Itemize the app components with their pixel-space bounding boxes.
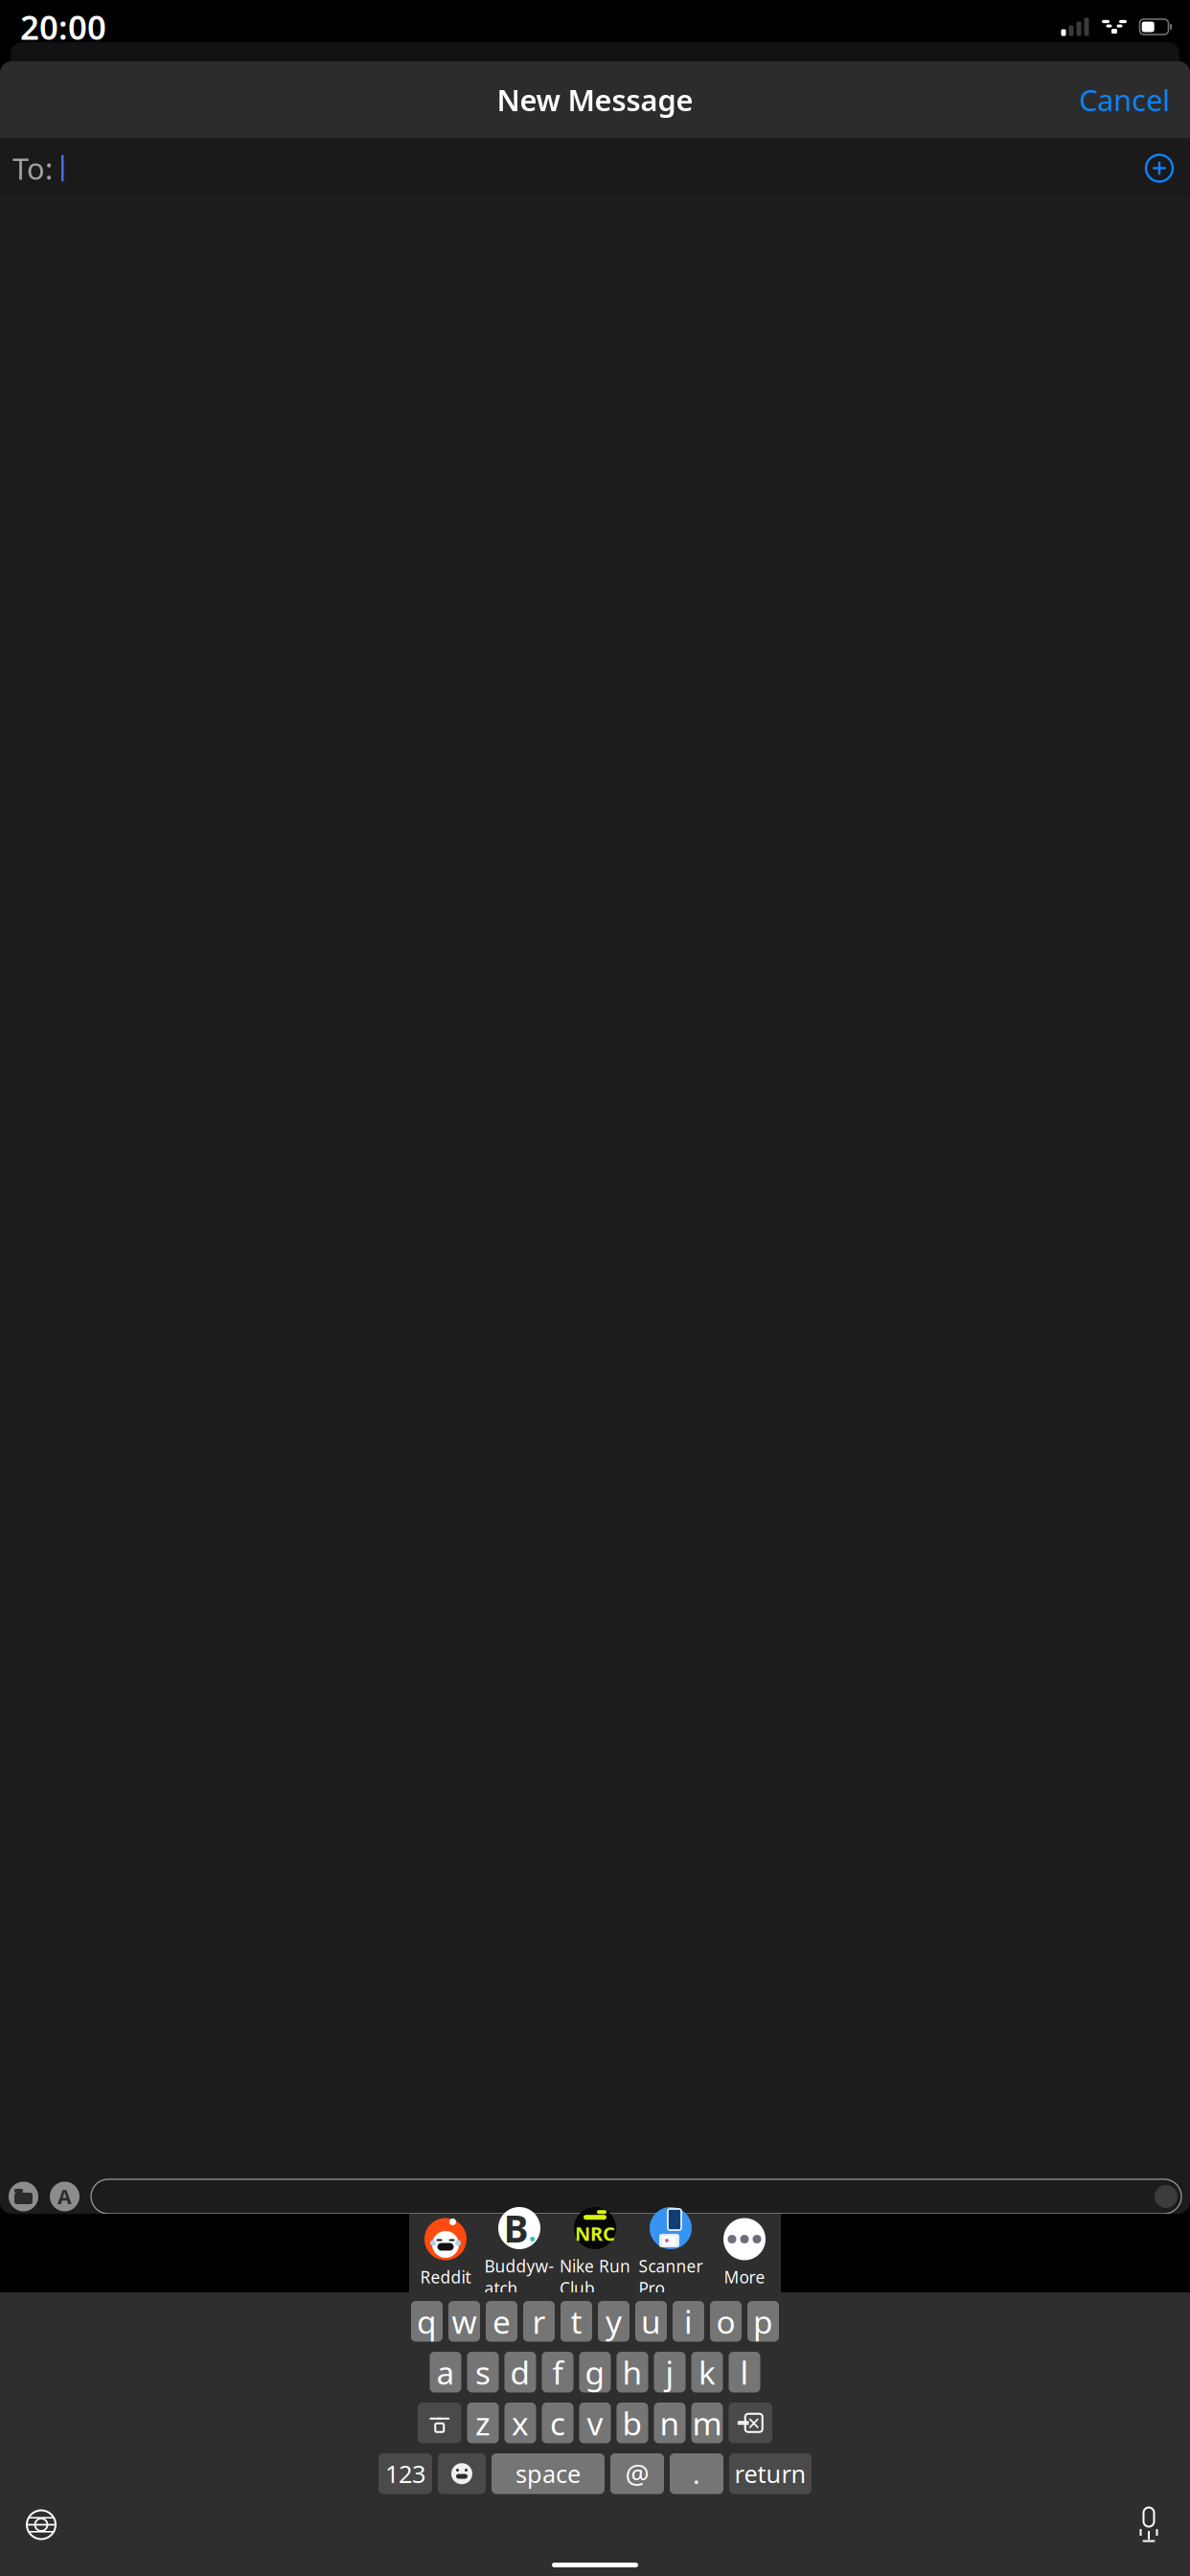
staticText: e (492, 2300, 511, 2343)
staticText: v (587, 2402, 603, 2444)
button[interactable]: Camera (9, 2182, 38, 2211)
staticText: x (512, 2402, 529, 2444)
button[interactable]: p (747, 2301, 779, 2342)
button[interactable]: u (635, 2301, 667, 2342)
staticText: New Message (497, 80, 693, 119)
button[interactable]: b (617, 2403, 648, 2443)
staticText: s (475, 2351, 491, 2393)
button[interactable]: n (654, 2403, 686, 2443)
button[interactable]: NRC (557, 2207, 633, 2299)
button[interactable]: t (561, 2301, 592, 2342)
staticText: m (692, 2402, 722, 2444)
button[interactable]: Delete (729, 2403, 772, 2443)
button[interactable]: B (482, 2207, 557, 2299)
button[interactable]: j (654, 2352, 686, 2392)
staticText: j (665, 2351, 674, 2393)
button[interactable]: x (504, 2403, 536, 2443)
button[interactable]: e (486, 2301, 517, 2342)
staticText: More (724, 2266, 765, 2288)
staticText: r (532, 2300, 546, 2343)
staticText: d (510, 2351, 530, 2393)
staticText: Reddit (420, 2266, 471, 2288)
staticText: o (716, 2300, 735, 2343)
staticText: c (550, 2402, 565, 2444)
button[interactable]: y (598, 2301, 629, 2342)
button[interactable]: i (673, 2301, 704, 2342)
staticText: k (698, 2351, 716, 2393)
button[interactable]: To: (0, 138, 1190, 198)
staticText: y (606, 2300, 622, 2343)
staticText: p (753, 2300, 773, 2343)
button[interactable]: space (492, 2453, 605, 2494)
button[interactable]: Shift (418, 2403, 461, 2443)
button[interactable]: o (710, 2301, 742, 2342)
staticText: b (622, 2402, 642, 2444)
button[interactable]: Scanner Pro (633, 2207, 708, 2299)
staticText: i (684, 2300, 693, 2343)
button[interactable]: Reddit (409, 2218, 482, 2288)
staticText: Scanner Pro (639, 2255, 703, 2299)
staticText: w (452, 2300, 477, 2343)
button[interactable]: a (430, 2352, 461, 2392)
button[interactable]: l (729, 2352, 760, 2392)
button[interactable]: f (542, 2352, 573, 2392)
staticText: Cancel (1079, 80, 1170, 119)
button[interactable]: z (467, 2403, 499, 2443)
staticText: z (475, 2402, 491, 2444)
button[interactable]: @ (610, 2453, 664, 2494)
staticText: . (693, 2456, 700, 2492)
staticText: × (748, 2408, 760, 2437)
staticText: l (740, 2351, 749, 2393)
button[interactable]: Cancel (1071, 71, 1178, 128)
staticText: n (660, 2402, 680, 2444)
button[interactable]: c (542, 2403, 573, 2443)
staticText: t (571, 2300, 582, 2343)
button[interactable]: q (411, 2301, 443, 2342)
staticText: a (436, 2351, 455, 2393)
staticText: A (57, 2183, 72, 2210)
staticText: Nike Run Club (560, 2255, 630, 2299)
staticText: h (622, 2351, 642, 2393)
staticText: To: (12, 149, 53, 188)
staticText: space (515, 2458, 581, 2490)
button[interactable]: . (670, 2453, 723, 2494)
button[interactable]: m (691, 2403, 723, 2443)
button[interactable]: Emoji (438, 2453, 486, 2494)
staticText: 123 (385, 2458, 425, 2490)
button[interactable]: g (579, 2352, 611, 2392)
button[interactable]: w (448, 2301, 480, 2342)
staticText: 20:00 (20, 5, 106, 49)
button[interactable]: s (467, 2352, 499, 2392)
staticText: B (504, 2203, 529, 2253)
button[interactable]: More (708, 2218, 781, 2288)
button[interactable]: Apps (50, 2182, 80, 2211)
staticText: return (734, 2458, 806, 2490)
staticText: NRC (575, 2221, 615, 2246)
staticText: q (417, 2300, 437, 2343)
button[interactable]: k (691, 2352, 723, 2392)
staticText: u (641, 2300, 661, 2343)
staticText: @ (625, 2456, 649, 2492)
button[interactable]: 123 (378, 2453, 432, 2494)
button[interactable]: Next keyboard (19, 2504, 63, 2546)
button[interactable]: return (729, 2453, 812, 2494)
button[interactable]: h (617, 2352, 648, 2392)
staticText: Buddywatch (484, 2255, 554, 2299)
button[interactable]: r (523, 2301, 555, 2342)
button[interactable]: Dictate (1127, 2504, 1171, 2546)
button[interactable]: v (579, 2403, 611, 2443)
staticText: f (552, 2351, 563, 2393)
staticText: g (585, 2351, 605, 2393)
button[interactable]: d (504, 2352, 536, 2392)
